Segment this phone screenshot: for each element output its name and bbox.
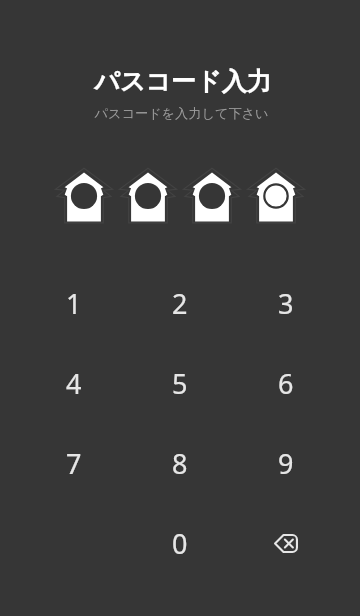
staticText: 7 [66,445,82,482]
staticText: 6 [278,365,294,402]
staticText: 0 [172,525,188,562]
staticText: パスコードを入力して下さい [94,105,269,122]
button[interactable]: 6 [233,343,339,423]
button[interactable]: 0 [127,503,233,583]
staticText: パスコード入力 [94,66,272,97]
button[interactable]: Backspace [233,503,339,583]
staticText: 3 [278,285,294,322]
staticText: 9 [278,445,294,482]
other: Backspace [274,534,298,553]
button[interactable]: 9 [233,423,339,503]
staticText: 4 [66,365,82,402]
button[interactable]: 5 [127,343,233,423]
button[interactable]: 3 [233,263,339,343]
staticText: 8 [172,445,188,482]
staticText: 2 [172,285,188,322]
button[interactable]: 4 [21,343,127,423]
staticText: 1 [66,285,82,322]
button[interactable]: 1 [21,263,127,343]
button[interactable]: 8 [127,423,233,503]
staticText: 5 [172,365,188,402]
button[interactable]: 2 [127,263,233,343]
button[interactable]: 7 [21,423,127,503]
